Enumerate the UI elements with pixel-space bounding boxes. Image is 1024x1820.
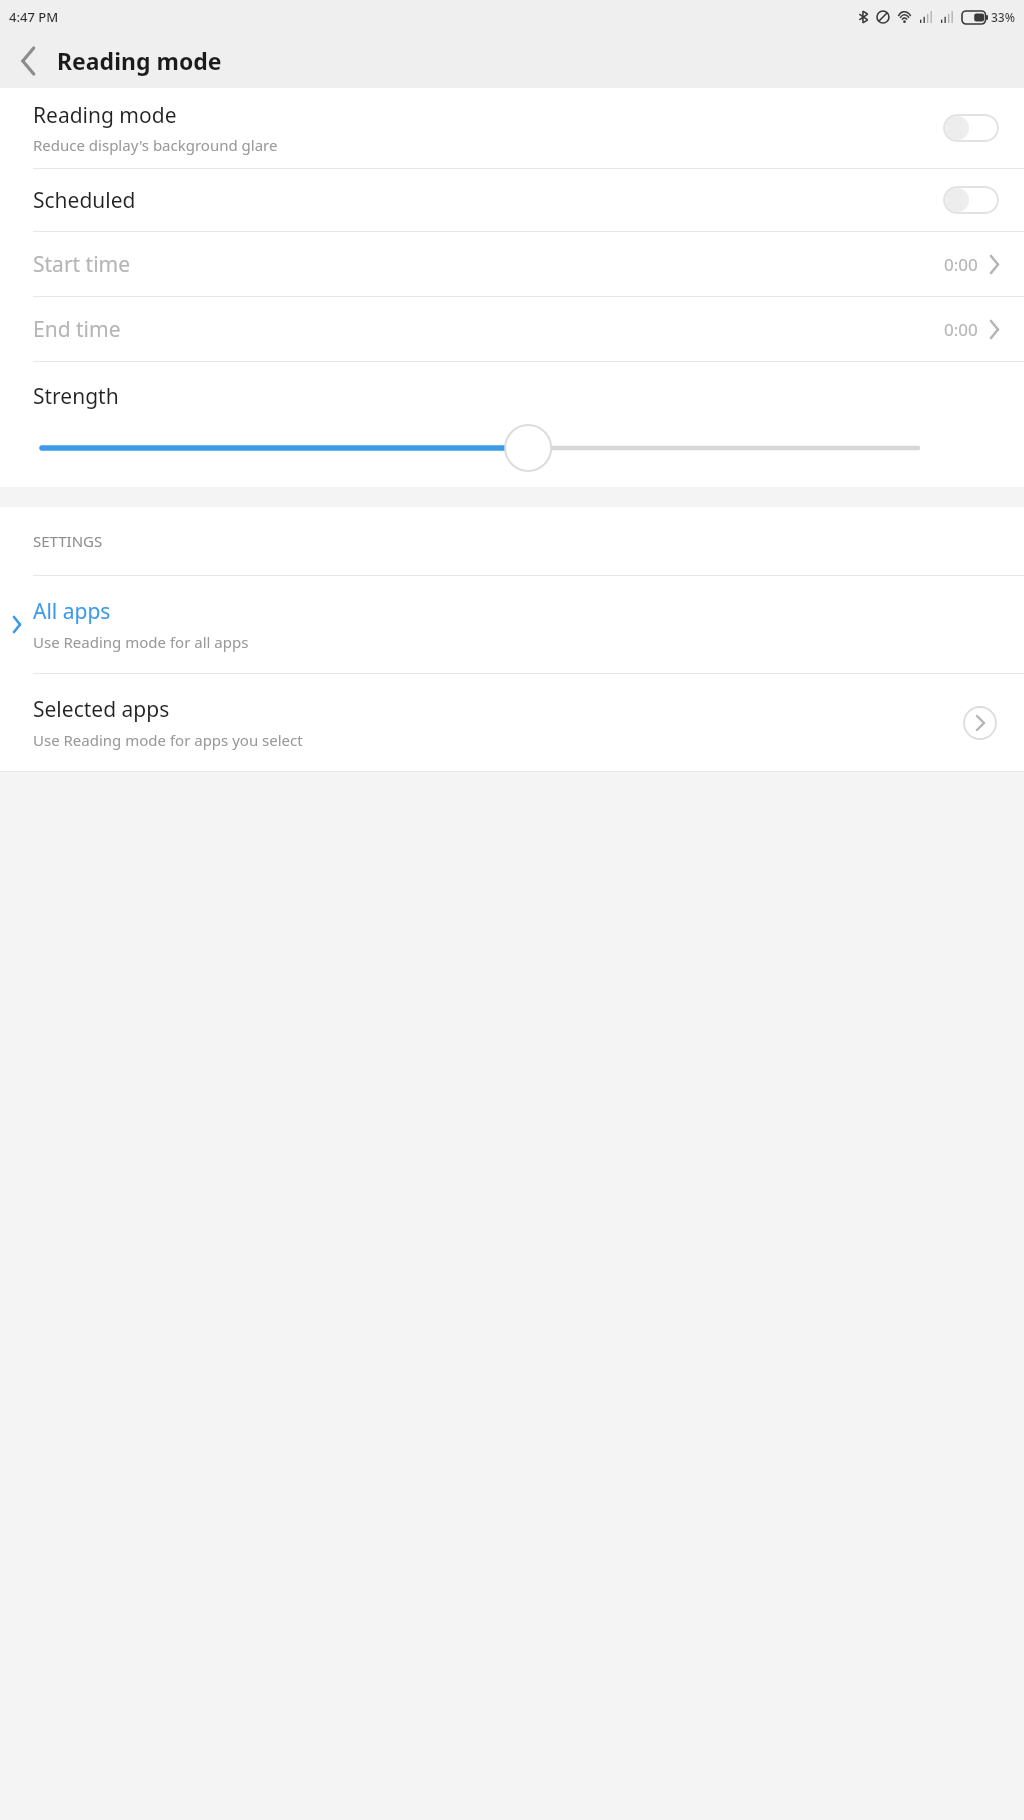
- staticText: Strength: [33, 382, 119, 411]
- button[interactable]: Reading mode: [0, 88, 1024, 168]
- button[interactable]: Toggle: [943, 114, 999, 142]
- button[interactable]: End time: [0, 297, 1024, 361]
- button[interactable]: Scheduled: [0, 169, 1024, 231]
- staticText: Start time: [33, 250, 944, 279]
- button[interactable]: All apps: [0, 576, 1024, 673]
- staticText: Use Reading mode for apps you select: [33, 730, 303, 750]
- staticText: 0:00: [944, 318, 978, 341]
- staticText: Reading mode: [33, 101, 177, 130]
- staticText: End time: [33, 315, 944, 344]
- staticText: 4:47 PM: [9, 8, 59, 26]
- staticText: Reduce display's background glare: [33, 135, 278, 155]
- staticText: 33%: [991, 9, 1015, 25]
- button[interactable]: Selected apps: [0, 674, 1024, 771]
- staticText: Reading mode: [57, 45, 222, 76]
- staticText: All apps: [33, 597, 111, 626]
- staticText: 0:00: [944, 253, 978, 276]
- staticText: SETTINGS: [33, 531, 103, 551]
- button[interactable]: Strength: [0, 362, 1024, 477]
- staticText: Scheduled: [33, 186, 136, 215]
- button[interactable]: Start time: [0, 232, 1024, 296]
- staticText: Selected apps: [33, 695, 170, 724]
- button[interactable]: Toggle: [943, 186, 999, 214]
- button[interactable]: Back: [0, 33, 56, 88]
- staticText: Use Reading mode for all apps: [33, 632, 249, 652]
